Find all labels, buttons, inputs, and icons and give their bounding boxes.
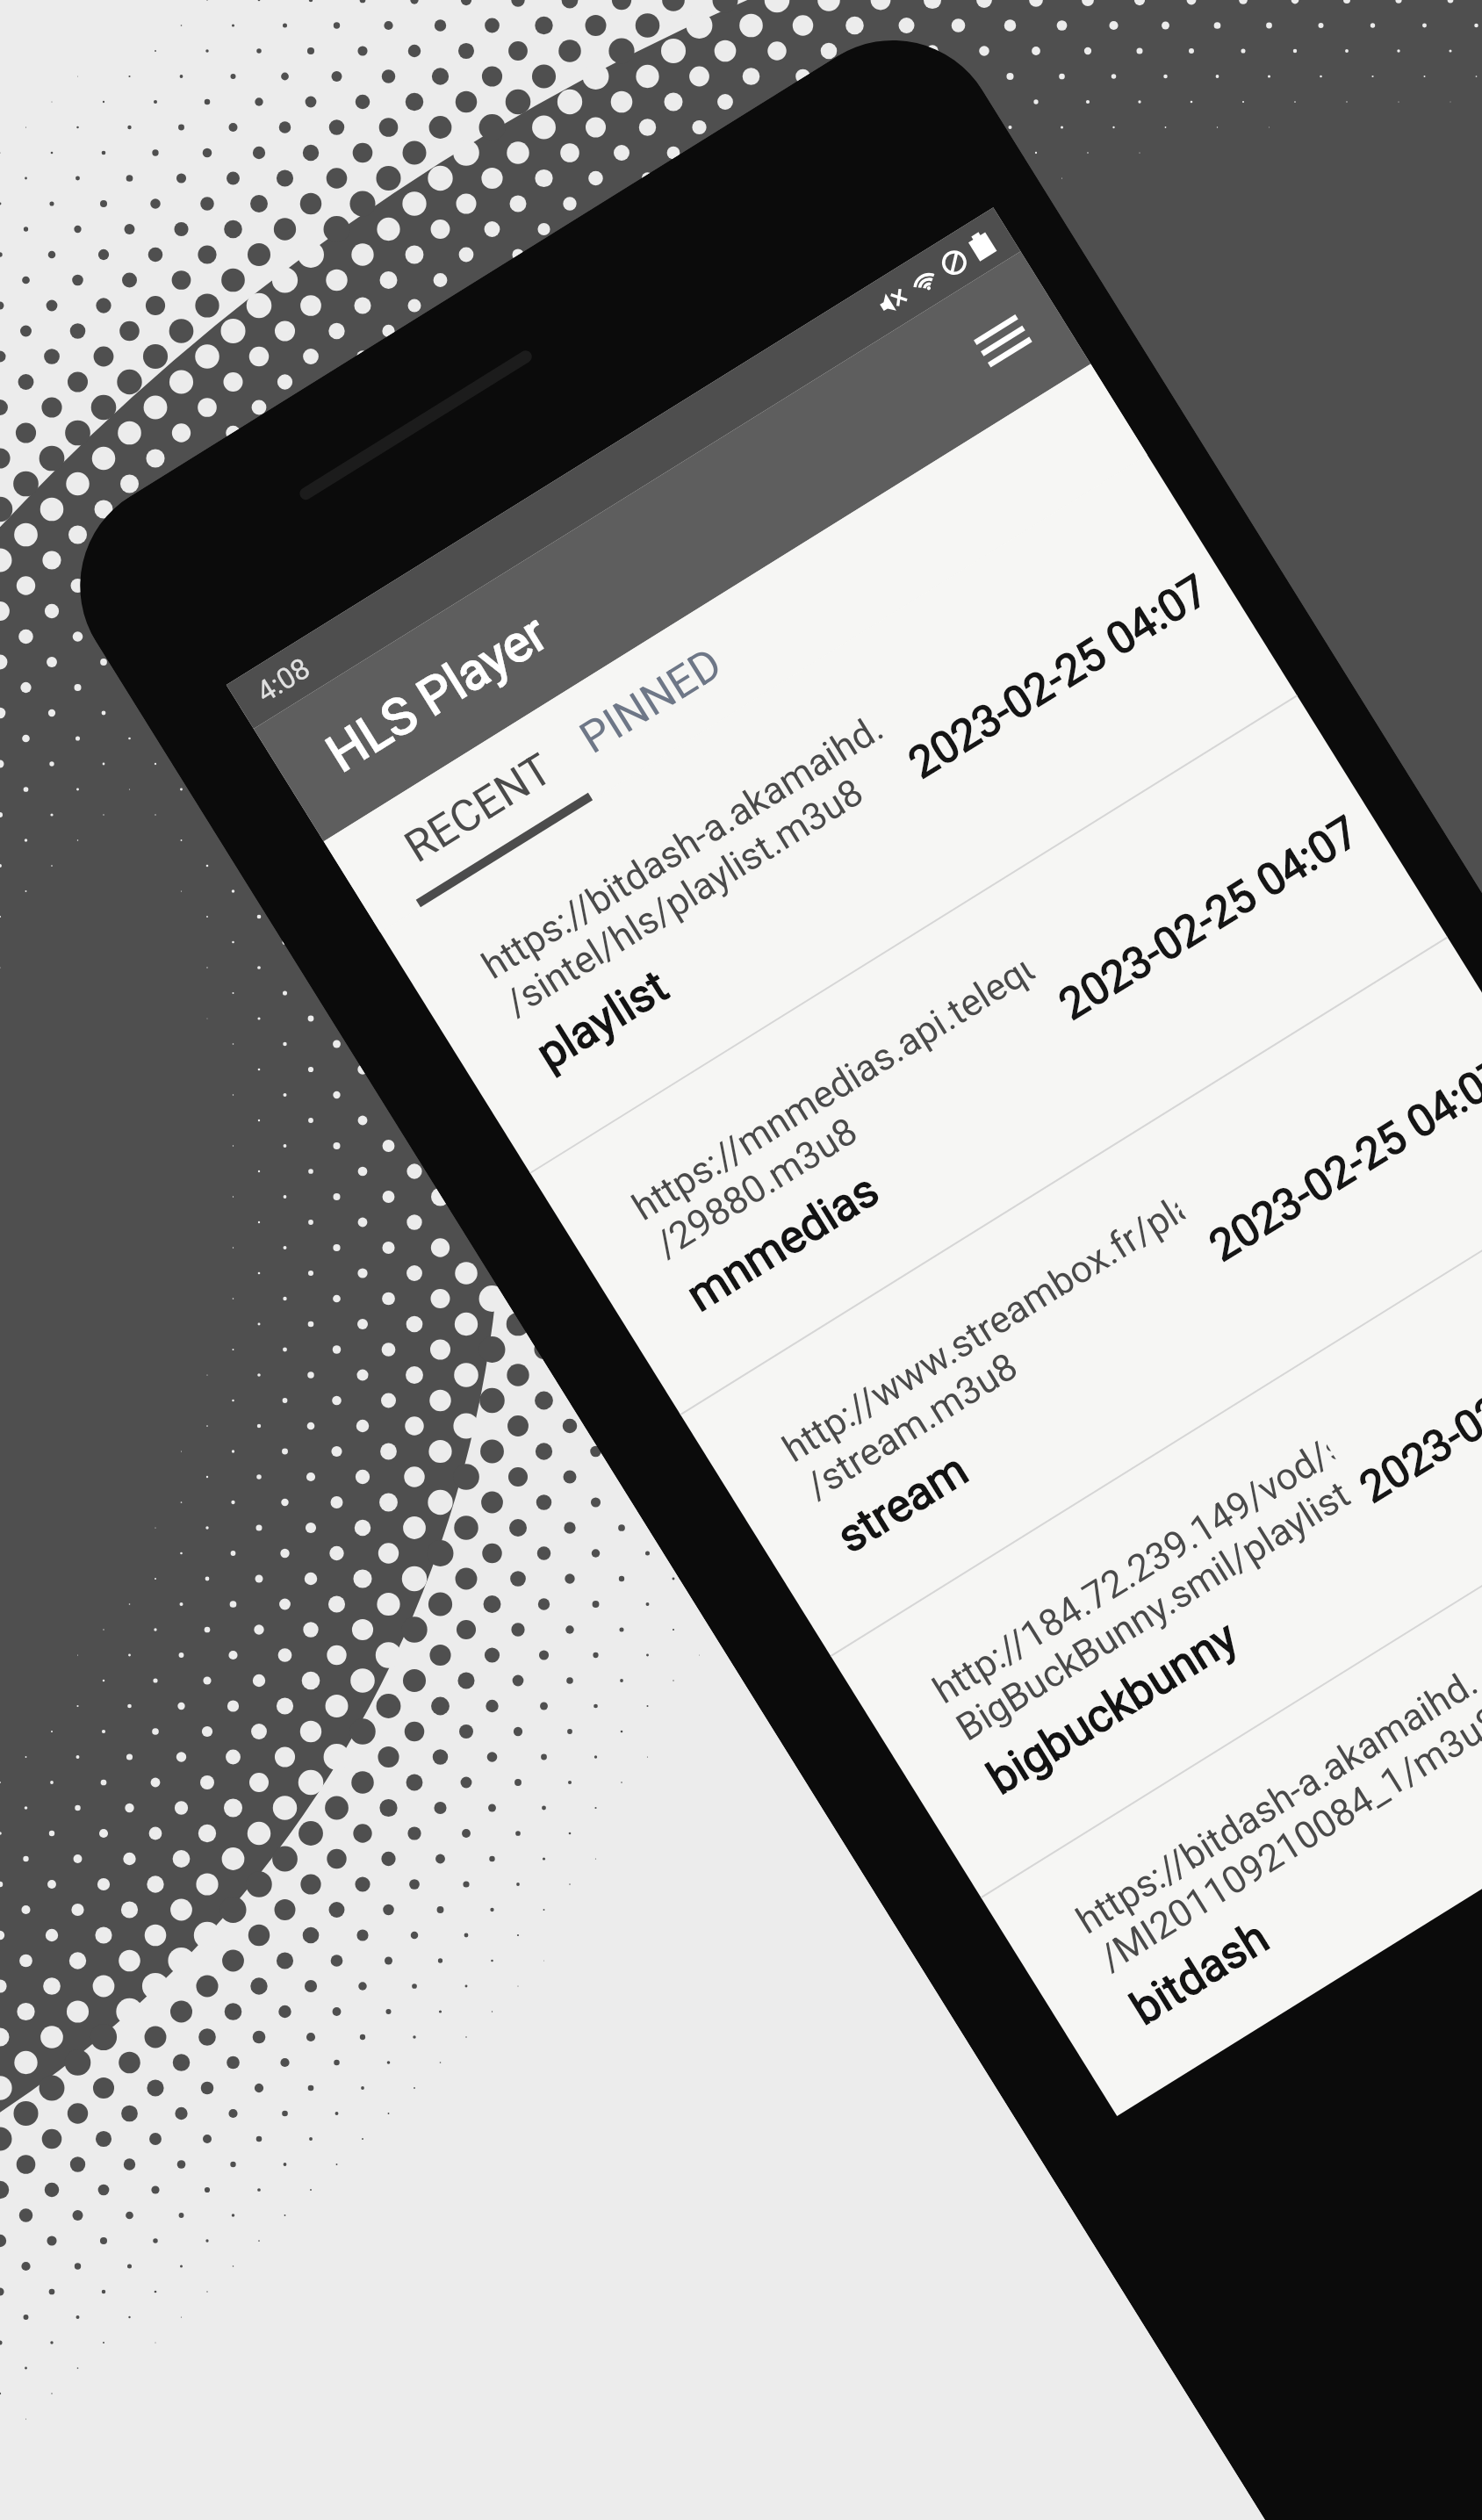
staticText: mnmedias (677, 1163, 888, 1322)
staticText: 2023-02-25 04:06 (1351, 1289, 1482, 1514)
button[interactable]: https://mnmedias.api.telequebec.tv/m3u8 (531, 696, 1447, 1414)
staticText: playlist (527, 959, 678, 1081)
button[interactable]: PINNED (536, 602, 765, 800)
staticText: https://bitdash-a.akamaihd.net/content (474, 706, 890, 988)
staticText: 2023-02-25 04:07 (1201, 1047, 1482, 1272)
staticText: BigBuckBunny.smil/playlist (948, 1472, 1358, 1749)
staticText: 4:08 (250, 650, 316, 709)
staticText: http://www.streambox.fr/playlists/test_0… (775, 1189, 1191, 1471)
staticText: /stream.m3u8 (798, 1344, 1025, 1508)
button[interactable]: http://www.streambox.fr/playlists/test_0… (681, 938, 1482, 1655)
staticText: /MI201109210084_1/m3u8s/f.m3u8 (1092, 1698, 1482, 1980)
staticText: /sintel/hls/playlist.m3u8 (497, 770, 871, 1025)
staticText: HLS Player (316, 603, 557, 784)
staticText: /29880.m3u8 (648, 1108, 865, 1266)
staticText: PINNED (571, 638, 731, 764)
staticText: 2023-02-25 04:07 (1050, 806, 1368, 1031)
staticText: bigbuckbunny (978, 1610, 1247, 1805)
staticText: 2023-02-25 04:07 (900, 564, 1218, 789)
staticText: RECENT (396, 744, 561, 873)
staticText: bitdash (1122, 1910, 1278, 2036)
button[interactable]: Open navigation menu (949, 287, 1057, 395)
button[interactable]: http://184.72.239.149/vod/smil: (831, 1179, 1482, 1897)
button[interactable]: https://bitdash-a.akamaihd.net/content (982, 1421, 1482, 2116)
button[interactable]: RECENT (364, 709, 593, 907)
button[interactable]: https://bitdash-a.akamaihd.net/content (380, 455, 1297, 1172)
staticText: http://184.72.239.149/vod/smil: (925, 1430, 1341, 1712)
staticText: stream (828, 1443, 978, 1564)
staticText: https://mnmedias.api.telequebec.tv/m3u8 (625, 947, 1041, 1229)
staticText: https://bitdash-a.akamaihd.net/content (1069, 1661, 1482, 1943)
